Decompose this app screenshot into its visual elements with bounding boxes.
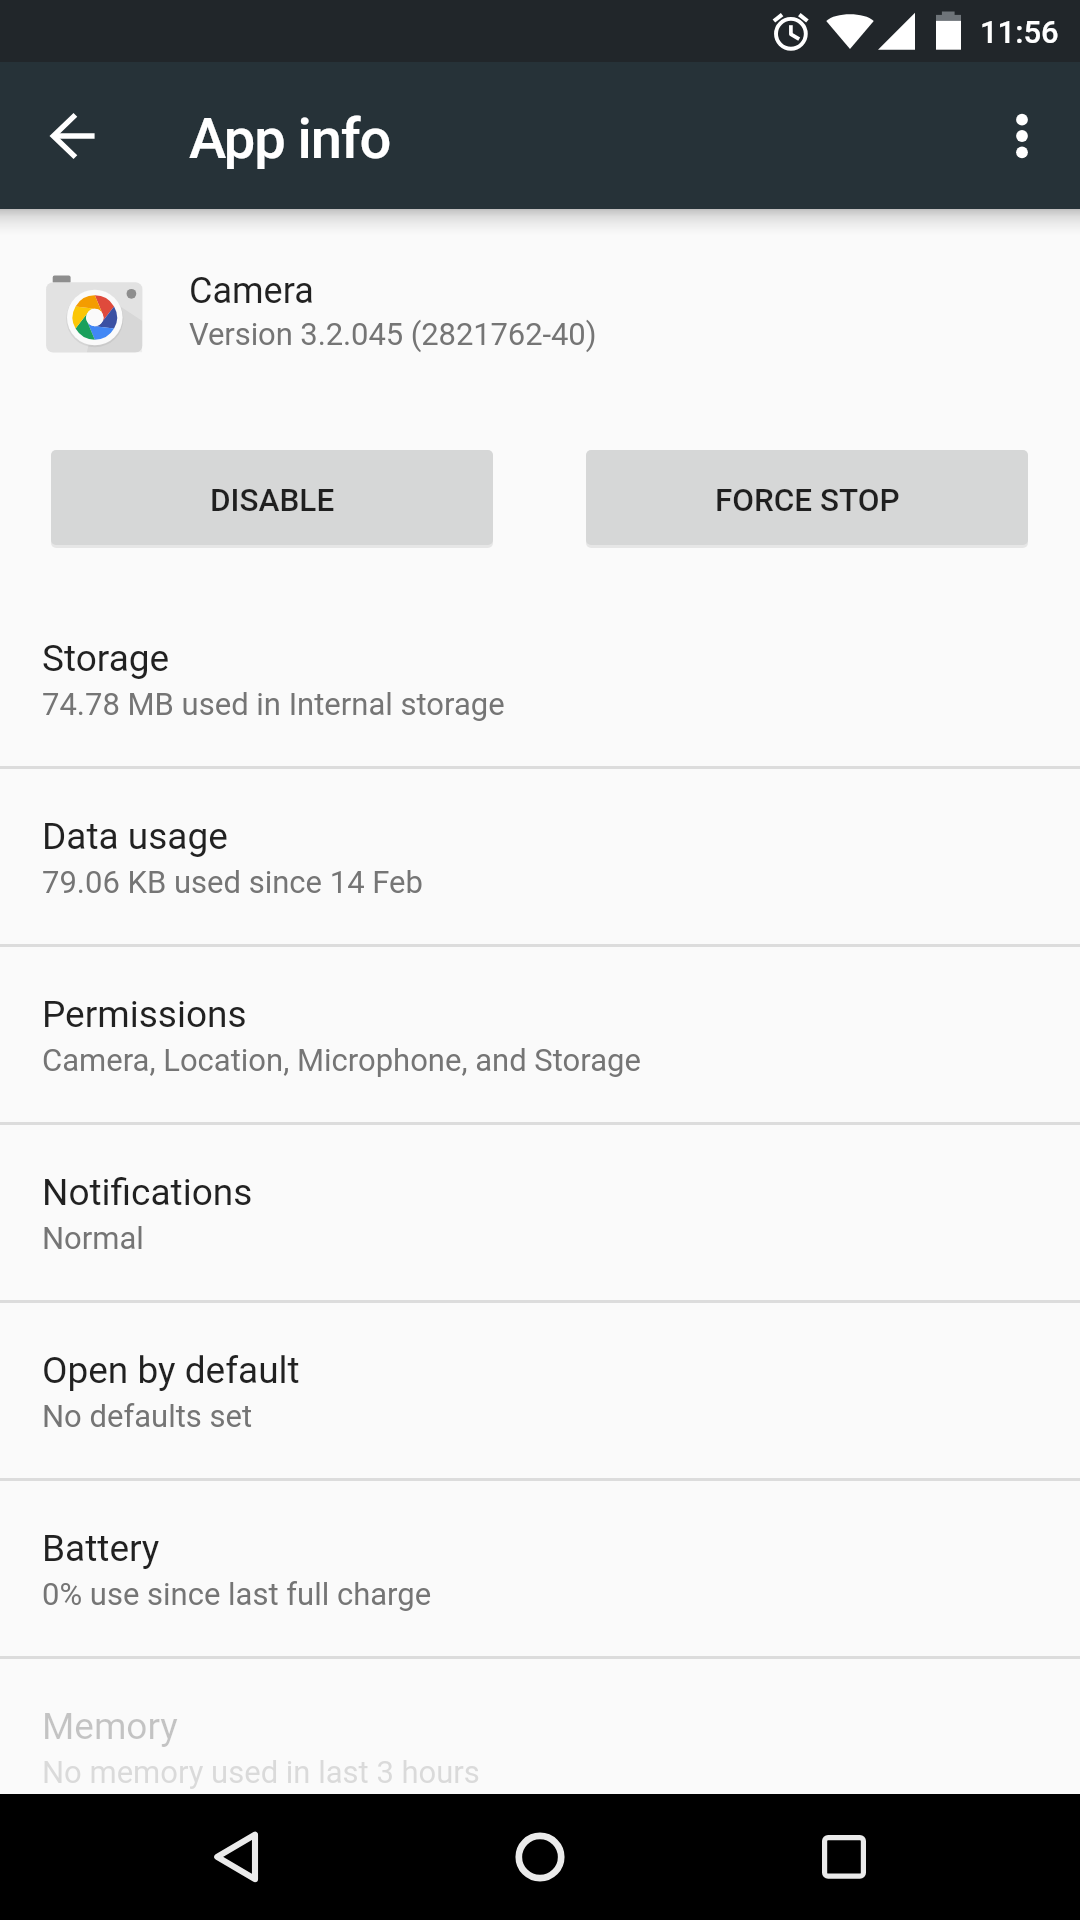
button[interactable]: Notifications: [0, 1125, 1080, 1300]
button[interactable]: Open by default: [0, 1303, 1080, 1478]
staticText: FORCE STOP: [715, 482, 900, 519]
staticText: Normal: [42, 1220, 144, 1256]
staticText: No defaults set: [42, 1398, 253, 1434]
staticText: DISABLE: [210, 482, 335, 519]
button[interactable]: Navigate up: [27, 90, 119, 182]
staticText: Permissions: [42, 993, 247, 1036]
button[interactable]: Recent apps: [794, 1807, 894, 1907]
staticText: 11:56: [980, 14, 1059, 50]
staticText: Storage: [42, 637, 170, 680]
staticText: Memory: [42, 1705, 178, 1748]
staticText: 0% use since last full charge: [42, 1576, 432, 1612]
staticText: Battery: [42, 1527, 160, 1570]
button[interactable]: Back: [186, 1807, 286, 1907]
staticText: 79.06 KB used since 14 Feb: [42, 864, 423, 900]
button[interactable]: Data usage: [0, 769, 1080, 944]
button[interactable]: More options: [976, 90, 1068, 182]
button[interactable]: DISABLE: [51, 450, 493, 545]
button[interactable]: Permissions: [0, 947, 1080, 1122]
staticText: Camera, Location, Microphone, and Storag…: [42, 1042, 641, 1078]
button[interactable]: Memory: [0, 1659, 1080, 1834]
button[interactable]: FORCE STOP: [586, 450, 1028, 545]
staticText: 74.78 MB used in Internal storage: [42, 686, 505, 722]
button[interactable]: Battery: [0, 1481, 1080, 1656]
staticText: Version 3.2.045 (2821762-40): [189, 316, 597, 352]
staticText: No memory used in last 3 hours: [42, 1754, 480, 1790]
button[interactable]: Storage: [0, 591, 1080, 766]
staticText: Camera: [189, 270, 314, 312]
staticText: Notifications: [42, 1171, 253, 1214]
button[interactable]: Home: [490, 1807, 590, 1907]
staticText: Open by default: [42, 1349, 300, 1392]
staticText: Data usage: [42, 815, 228, 858]
staticText: App info: [189, 106, 391, 172]
